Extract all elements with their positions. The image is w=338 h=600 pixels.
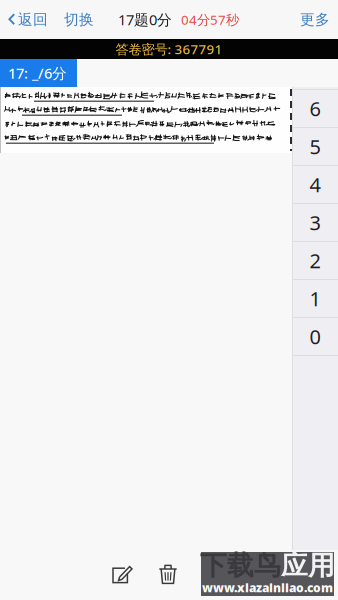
staticText: 17题0分 <box>118 10 172 29</box>
button[interactable]: 6 <box>292 90 338 128</box>
staticText: 返回 <box>18 10 48 28</box>
staticText: 4 <box>309 171 320 198</box>
staticText: 1 <box>309 285 320 312</box>
staticText: 0 <box>309 323 320 350</box>
staticText: 17: _/6分 <box>8 63 67 83</box>
staticText: 应用 <box>281 549 335 582</box>
button[interactable]: 4 <box>292 166 338 204</box>
staticText: 答卷密号: 367791 <box>115 40 222 58</box>
staticText: 更多 <box>300 10 330 28</box>
staticText: 6 <box>309 95 320 122</box>
button[interactable]: 更多 <box>290 0 338 39</box>
staticText: 2 <box>309 247 320 274</box>
button[interactable]: Delete <box>153 554 183 594</box>
staticText: 5 <box>309 133 320 160</box>
button[interactable]: 3 <box>292 204 338 242</box>
button[interactable]: 1 <box>292 280 338 318</box>
staticText: 下载鸟 <box>200 549 281 582</box>
staticText: 3 <box>309 209 320 236</box>
staticText: 切换 <box>64 10 94 28</box>
button[interactable]: 0 <box>292 318 338 356</box>
button[interactable]: 5 <box>292 128 338 166</box>
staticText: www.xlazainliao.com <box>202 579 333 595</box>
staticText: 04分57秒 <box>181 11 239 28</box>
button[interactable]: 返回 <box>0 0 48 39</box>
button[interactable]: 切换 <box>48 0 94 39</box>
button[interactable]: Annotate <box>106 554 140 594</box>
button[interactable]: 2 <box>292 242 338 280</box>
